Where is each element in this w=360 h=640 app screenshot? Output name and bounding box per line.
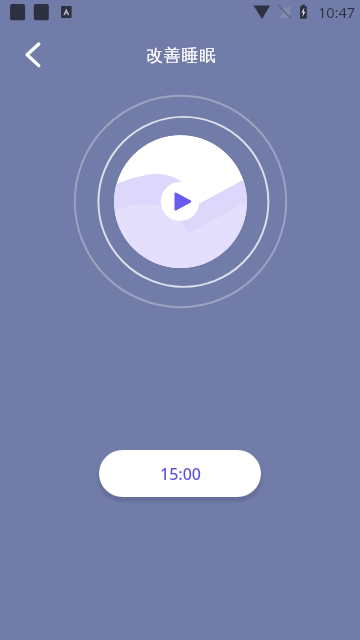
button[interactable]: 15:00	[99, 450, 261, 497]
staticText: 改善睡眠	[146, 45, 217, 66]
staticText: 10:47	[318, 2, 356, 22]
button[interactable]: Back	[12, 35, 54, 77]
staticText: 15:00	[160, 463, 201, 485]
